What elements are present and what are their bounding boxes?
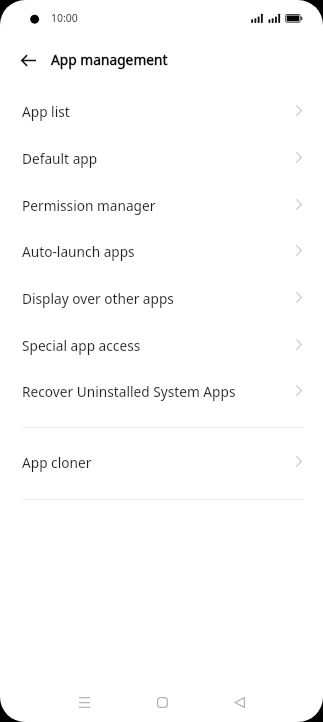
button[interactable]: Home: [142, 682, 182, 722]
button[interactable]: Auto-launch apps: [0, 228, 323, 275]
staticText: App management: [51, 49, 168, 69]
button[interactable]: Navigate up: [10, 42, 46, 78]
staticText: Recover Uninstalled System Apps: [22, 381, 236, 401]
staticText: Default app: [22, 148, 98, 168]
staticText: App list: [22, 101, 70, 121]
staticText: Display over other apps: [22, 288, 174, 308]
button[interactable]: Special app access: [0, 322, 323, 369]
staticText: Special app access: [22, 335, 141, 355]
staticText: App cloner: [22, 452, 92, 472]
staticText: 10:00: [51, 10, 78, 25]
button[interactable]: Default app: [0, 135, 323, 182]
button[interactable]: Back: [219, 682, 259, 722]
button[interactable]: App cloner: [0, 439, 323, 486]
staticText: Auto-launch apps: [22, 241, 135, 261]
button[interactable]: Recent apps: [64, 682, 104, 722]
button[interactable]: App list: [0, 88, 323, 135]
button[interactable]: Display over other apps: [0, 275, 323, 322]
button[interactable]: Recover Uninstalled System Apps: [0, 368, 323, 415]
button[interactable]: Permission manager: [0, 182, 323, 229]
staticText: Permission manager: [22, 195, 156, 215]
